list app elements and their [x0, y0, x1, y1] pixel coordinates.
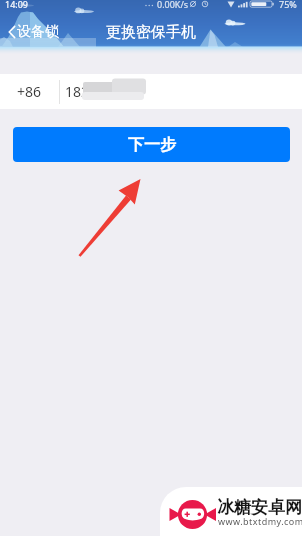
staticText: 182	[65, 82, 90, 101]
staticText: +86	[17, 82, 42, 101]
staticText: 下一步	[128, 135, 176, 155]
staticText: www.btxtdmy.com	[218, 515, 302, 527]
staticText: 75%	[279, 0, 297, 10]
staticText: 更换密保手机	[106, 23, 196, 42]
button[interactable]: 设备锁	[9, 20, 59, 44]
button[interactable]: 下一步	[13, 127, 290, 162]
staticText: 设备锁	[17, 23, 59, 41]
staticText: 0.00K/s	[157, 0, 189, 10]
button[interactable]: +86	[0, 74, 59, 109]
staticText: 冰糖安卓网	[217, 497, 302, 518]
staticText: 14:09	[5, 0, 29, 10]
button[interactable]: 182	[60, 74, 302, 109]
